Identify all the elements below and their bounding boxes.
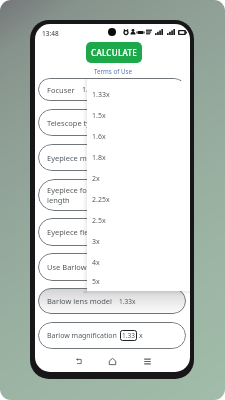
staticText: x — [139, 331, 143, 341]
button[interactable]: 1.5x — [87, 105, 190, 126]
button[interactable]: Eyepiece field — [38, 218, 186, 246]
button[interactable]: Back — [71, 354, 86, 369]
staticText: 1.33x — [119, 297, 136, 306]
button[interactable]: Barlow lens model — [38, 288, 186, 314]
staticText: 1.6x — [92, 132, 106, 142]
button[interactable]: Home — [105, 354, 120, 369]
staticText: 3x — [92, 237, 100, 247]
button[interactable]: Eyepiece focal length — [38, 179, 186, 211]
button[interactable]: Use Barlow lens — [38, 253, 186, 281]
button[interactable]: Eyepiece model — [38, 144, 186, 171]
button[interactable]: Barlow magnification — [38, 322, 186, 349]
staticText: 1.33x — [92, 90, 110, 100]
button[interactable]: Focuser — [38, 78, 186, 101]
button[interactable]: 1.6x — [87, 126, 190, 147]
staticText: 1.5x — [92, 111, 106, 121]
button[interactable]: CALCULATE — [86, 42, 142, 63]
button[interactable]: 3x — [87, 231, 190, 252]
button[interactable]: 1.8x — [87, 147, 190, 168]
staticText: 13:48 — [42, 29, 59, 38]
button[interactable]: 5x — [87, 273, 190, 291]
staticText: Eyepiece field — [47, 227, 96, 237]
staticText: 1.8x — [92, 153, 106, 163]
button[interactable]: Telescope type — [38, 109, 186, 136]
staticText: CALCULATE — [91, 47, 138, 58]
button[interactable]: 4x — [87, 252, 190, 273]
staticText: 5x — [92, 277, 100, 287]
staticText: Telescope type — [47, 118, 99, 128]
staticText: Barlow magnification — [47, 331, 117, 341]
button[interactable]: 2x — [87, 168, 190, 189]
staticText: Barlow lens model — [47, 296, 113, 306]
staticText: Focuser — [47, 85, 75, 95]
button[interactable]: 1.33x — [87, 84, 190, 105]
staticText: 2.25x — [92, 195, 110, 205]
staticText: 4x — [92, 258, 100, 268]
button[interactable]: Terms of Use — [92, 65, 134, 77]
staticText: Eyepiece focal length — [47, 185, 97, 205]
staticText: 1.25" — [82, 85, 99, 95]
button[interactable]: Recent apps — [140, 354, 155, 369]
staticText: 2.5x — [92, 216, 106, 226]
staticText: 1.33 — [122, 331, 135, 340]
staticText: Eyepiece model — [47, 153, 103, 163]
staticText: 2x — [92, 174, 100, 184]
button[interactable]: 2.5x — [87, 210, 190, 231]
staticText: Use Barlow lens — [47, 262, 103, 272]
button[interactable]: 2.25x — [87, 189, 190, 210]
